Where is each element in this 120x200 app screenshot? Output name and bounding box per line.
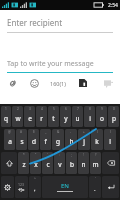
staticText: h (69, 137, 74, 146)
button[interactable]: @ (4, 129, 15, 150)
button[interactable]: Emoji (26, 75, 42, 91)
button[interactable]: 8 (84, 106, 95, 127)
staticText: d (32, 137, 36, 146)
button[interactable]: ' (42, 152, 53, 174)
staticText: 160(1) (50, 80, 66, 87)
staticText: ? (95, 153, 97, 157)
button[interactable]: Send (100, 75, 116, 91)
button[interactable]: _ (40, 129, 51, 150)
staticText: j (83, 137, 85, 146)
button[interactable]: - (65, 129, 77, 150)
button[interactable]: Key (15, 176, 28, 198)
staticText: +!= (18, 187, 25, 193)
button[interactable]: Key (1, 176, 14, 198)
staticText: b (70, 160, 74, 169)
staticText: ! (83, 153, 84, 157)
button[interactable]: 0 (108, 106, 119, 127)
staticText: ) (110, 130, 111, 134)
button[interactable]: Key (89, 176, 101, 198)
staticText: $ (33, 130, 35, 134)
button[interactable]: " (30, 152, 41, 174)
staticText: z (22, 160, 26, 169)
staticText: 7 (77, 107, 79, 111)
button[interactable]: * (18, 152, 29, 174)
staticText: + (83, 130, 85, 134)
staticText: m (92, 160, 99, 169)
staticText: p (112, 114, 116, 123)
staticText: t (52, 114, 55, 123)
button[interactable]: 6 (60, 106, 71, 127)
button[interactable]: Tap to write your message (0, 59, 120, 73)
staticText: y (64, 114, 68, 123)
button[interactable]: & (52, 129, 64, 150)
staticText: f (44, 137, 47, 146)
button[interactable]: ? (90, 152, 101, 174)
staticText: e (28, 114, 32, 123)
staticText: r (40, 114, 43, 123)
staticText: Tap to write your message (7, 59, 94, 69)
button[interactable]: Key (42, 176, 88, 198)
staticText: g (56, 137, 60, 146)
staticText: 2:54 (108, 2, 118, 9)
staticText: - (70, 130, 72, 134)
staticText: n (81, 160, 86, 169)
staticText: Enter recipient (7, 17, 63, 28)
staticText: ^ (34, 177, 36, 181)
staticText: : (59, 153, 60, 157)
staticText: 9 (101, 107, 103, 111)
staticText: ' (95, 177, 96, 181)
staticText: 0 (113, 107, 115, 111)
staticText: 4 (41, 107, 43, 111)
staticText: 5 (53, 107, 55, 111)
button[interactable]: 1 (1, 106, 11, 127)
button[interactable]: Enter recipient (0, 10, 120, 33)
button[interactable]: Key (102, 152, 119, 174)
staticText: 3 (29, 107, 31, 111)
staticText: s (20, 137, 24, 146)
staticText: i (89, 114, 91, 123)
button[interactable]: 3 (24, 106, 35, 127)
button[interactable]: 5 (48, 106, 59, 127)
staticText: x (34, 160, 38, 169)
button[interactable]: $ (28, 129, 39, 150)
staticText: 8 (89, 107, 91, 111)
staticText: , (34, 185, 36, 193)
button[interactable]: ( (91, 129, 103, 150)
button[interactable]: 2 (12, 106, 23, 127)
staticText: w (15, 114, 21, 123)
staticText: u (75, 114, 80, 123)
button[interactable]: 9 (96, 106, 107, 127)
button[interactable]: Key (102, 176, 119, 198)
staticText: . (94, 185, 96, 193)
button[interactable]: 7 (72, 106, 83, 127)
button[interactable]: ; (66, 152, 77, 174)
button[interactable]: ) (104, 129, 116, 150)
staticText: l (109, 137, 111, 146)
button[interactable]: Key (1, 152, 17, 174)
staticText: _ (45, 130, 47, 134)
staticText: @ (8, 130, 11, 134)
staticText: ; (71, 153, 72, 157)
staticText: 1 (5, 107, 7, 111)
staticText: & (57, 130, 60, 134)
staticText: 123 (18, 182, 25, 187)
staticText: c (46, 160, 50, 169)
button[interactable]: + (78, 129, 90, 150)
staticText: o (100, 114, 104, 123)
staticText: * (23, 153, 25, 157)
button[interactable]: 4 (36, 106, 47, 127)
button[interactable]: : (54, 152, 65, 174)
button[interactable]: Key (29, 176, 41, 198)
staticText: q (4, 114, 8, 123)
staticText: 2 (17, 107, 19, 111)
staticText: ' (47, 153, 48, 157)
staticText: k (95, 137, 99, 146)
staticText: a (8, 137, 12, 146)
button[interactable]: Attach (4, 75, 20, 91)
staticText: ( (97, 130, 98, 134)
button[interactable]: ! (78, 152, 89, 174)
staticText: # (20, 130, 23, 134)
staticText: v (58, 160, 62, 169)
button[interactable]: SIM (75, 75, 91, 91)
button[interactable]: # (16, 129, 27, 150)
